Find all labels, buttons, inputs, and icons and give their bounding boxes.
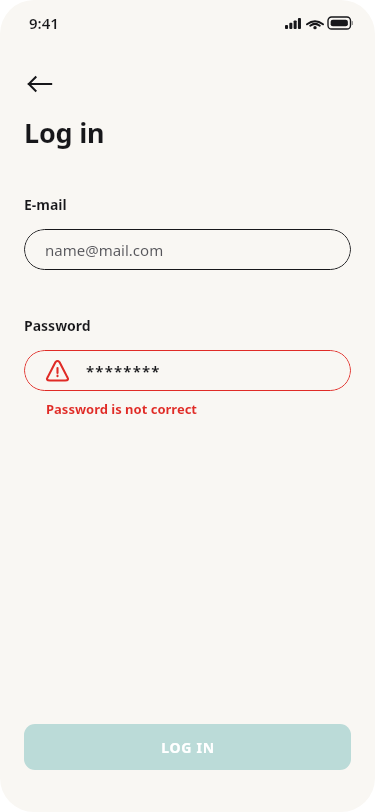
button[interactable]: Back [18,62,62,106]
staticText: Password is not correct [46,400,198,418]
staticText: name@mail.com [45,240,164,260]
staticText: ******** [86,361,161,381]
button[interactable]: ******** [24,350,351,391]
button[interactable]: LOG IN [24,724,351,770]
staticText: Log in [24,114,105,151]
staticText: Password [24,316,91,335]
staticText: 9:41 [29,13,59,33]
staticText: LOG IN [161,738,215,757]
button[interactable]: name@mail.com [24,229,351,270]
staticText: E-mail [24,195,67,214]
